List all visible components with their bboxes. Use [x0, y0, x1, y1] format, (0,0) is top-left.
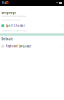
staticText: Default — [1, 38, 12, 41]
staticText: › — [62, 44, 63, 48]
button[interactable]: Spell Checker — [0, 22, 64, 29]
staticText: •• — [56, 1, 58, 5]
staticText: › — [62, 24, 63, 27]
staticText: 9:41 — [2, 1, 9, 5]
staticText: Suggested for your region — [1, 19, 20, 21]
button[interactable]: Keyboard Language — [0, 43, 64, 50]
staticText: Spell Checker — [6, 24, 25, 27]
staticText: Language — [1, 11, 16, 14]
staticText: Choose your preferred language — [1, 15, 26, 17]
staticText: Keyboard Language — [6, 44, 32, 48]
staticText: Automatically check spelling as you type — [1, 30, 27, 32]
